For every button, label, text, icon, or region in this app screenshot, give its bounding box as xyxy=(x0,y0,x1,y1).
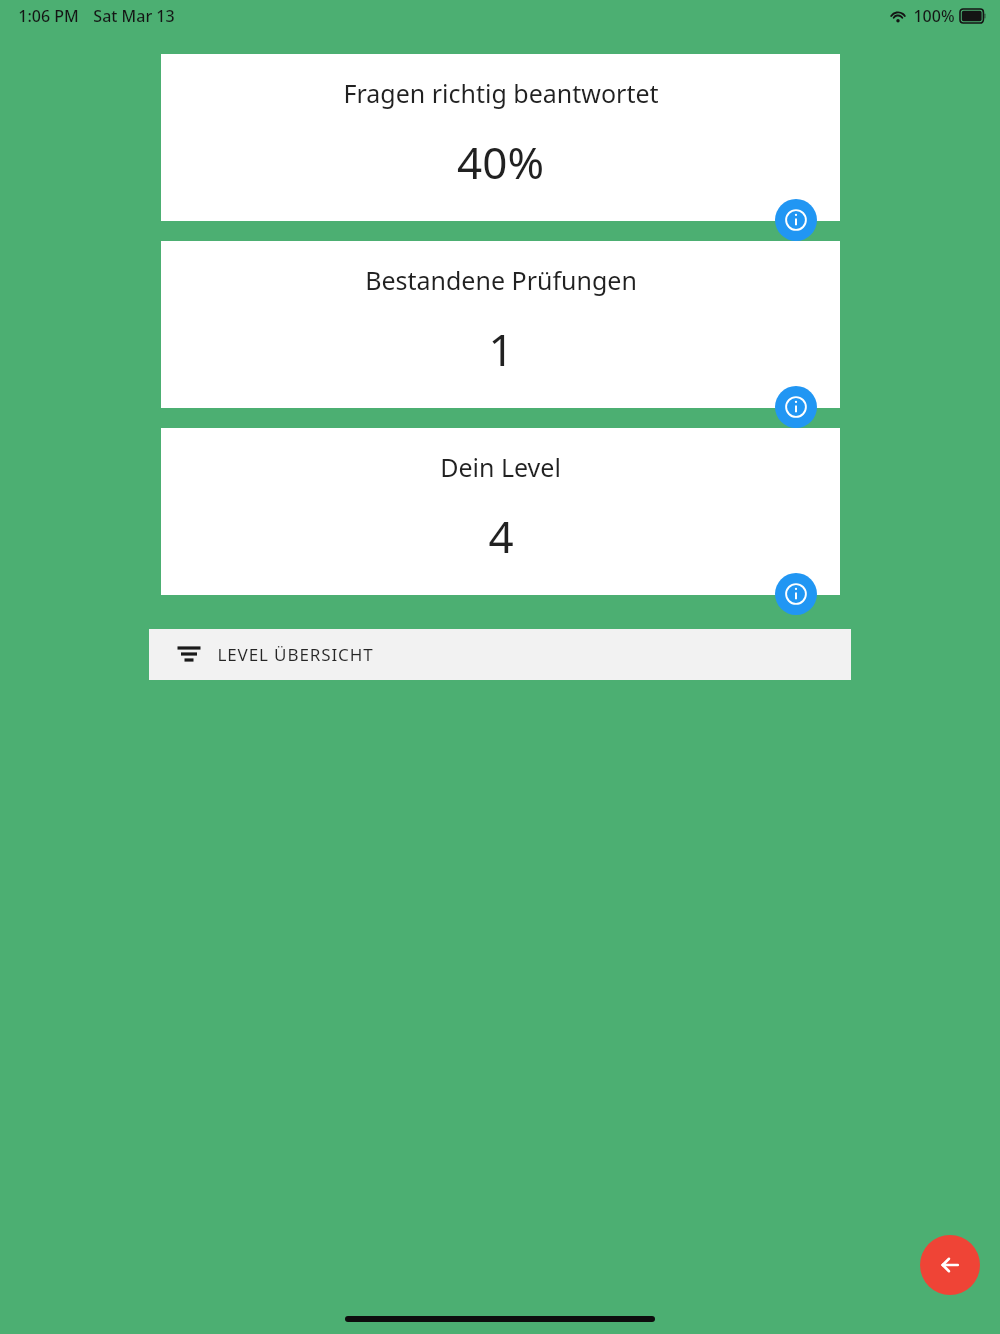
staticText: LEVEL ÜBERSICHT xyxy=(217,643,374,666)
staticText: Bestandene Prüfungen xyxy=(365,263,637,297)
staticText: Dein Level xyxy=(440,450,561,484)
button[interactable]: LEVEL ÜBERSICHT xyxy=(149,629,851,680)
button[interactable]: Fragen richtig beantwortet xyxy=(161,54,840,221)
staticText: Fragen richtig beantwortet xyxy=(343,76,659,110)
staticText: 4 xyxy=(488,506,514,566)
staticText: 1:06 PM xyxy=(18,5,79,27)
button[interactable]: Zurück xyxy=(920,1235,980,1295)
staticText: 1 xyxy=(488,319,514,379)
button[interactable]: Bestandene Prüfungen xyxy=(161,241,840,408)
button[interactable]: Info xyxy=(775,386,817,428)
staticText: 40% xyxy=(457,132,544,192)
staticText: 100% xyxy=(913,5,955,27)
button[interactable]: Info xyxy=(775,199,817,241)
button[interactable]: Dein Level xyxy=(161,428,840,595)
button[interactable]: Info xyxy=(775,573,817,615)
staticText: Sat Mar 13 xyxy=(93,5,175,27)
